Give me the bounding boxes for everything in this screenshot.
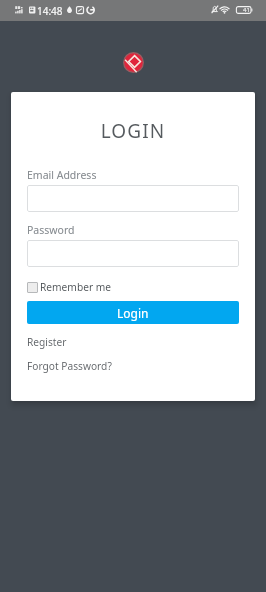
button[interactable]: Login: [27, 301, 239, 324]
staticText: Password: [27, 223, 75, 237]
button[interactable]: Remember me: [27, 280, 112, 294]
button[interactable]: [27, 185, 239, 212]
staticText: 41: [243, 6, 250, 14]
other: App logo: [123, 52, 144, 73]
button[interactable]: [27, 240, 239, 267]
staticText: Email Address: [27, 168, 97, 182]
button[interactable]: Register: [27, 335, 67, 349]
staticText: Login: [117, 305, 149, 321]
staticText: 14:48: [37, 4, 63, 18]
staticText: Remember me: [40, 280, 112, 294]
button[interactable]: Forgot Password?: [27, 359, 112, 373]
staticText: LOGIN: [27, 118, 239, 144]
